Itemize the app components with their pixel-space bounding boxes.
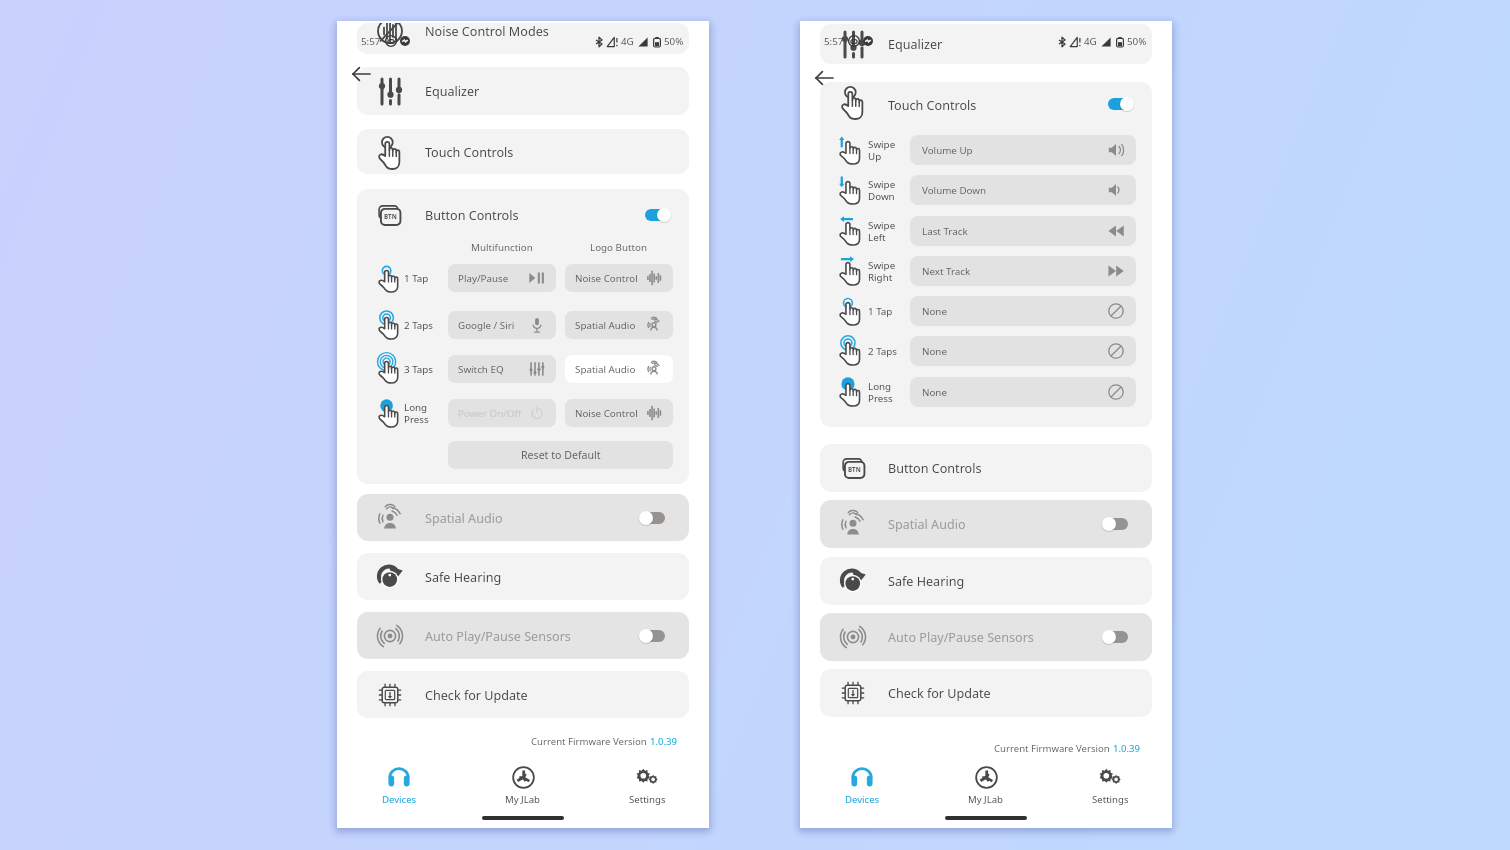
staticText: Noise Control Modes xyxy=(425,23,549,40)
staticText: Multifunction xyxy=(471,241,533,254)
staticText: 1.0.39 xyxy=(650,735,678,748)
staticText: None xyxy=(922,345,947,358)
staticText: 5:57 xyxy=(361,35,381,48)
staticText: 4G xyxy=(1084,35,1097,48)
button[interactable]: Volume Up xyxy=(910,135,1136,165)
button[interactable]: Back xyxy=(351,64,371,84)
staticText: Switch EQ xyxy=(458,363,504,376)
button[interactable]: Check for Update xyxy=(357,671,689,718)
staticText: Equalizer xyxy=(425,83,480,100)
button[interactable]: Play/Pause xyxy=(448,264,556,292)
staticText: Noise Control xyxy=(575,272,638,285)
button[interactable]: Toggle xyxy=(640,628,668,644)
staticText: Button Controls xyxy=(888,460,982,477)
button[interactable]: Power On/Off xyxy=(448,399,556,427)
button[interactable]: Spatial Audio xyxy=(820,500,1152,548)
button[interactable]: Toggle xyxy=(1108,96,1136,112)
button[interactable]: None xyxy=(910,336,1136,366)
button[interactable]: Button Controls xyxy=(357,189,689,237)
button[interactable]: Reset to Default xyxy=(448,441,673,469)
staticText: 5:57 xyxy=(824,35,844,48)
staticText: Swipe Left xyxy=(868,219,896,244)
button[interactable]: Settings xyxy=(1048,762,1172,808)
button[interactable]: Spatial Audio xyxy=(565,355,673,383)
staticText: Devices xyxy=(382,793,417,806)
button[interactable]: Volume Down xyxy=(910,175,1136,205)
staticText: 1 Tap xyxy=(868,305,893,318)
button[interactable]: Safe Hearing xyxy=(357,553,689,600)
button[interactable]: Switch EQ xyxy=(448,355,556,383)
button[interactable]: Back xyxy=(814,68,834,88)
button[interactable]: Devices xyxy=(337,762,461,808)
button[interactable]: Check for Update xyxy=(820,669,1152,717)
staticText: Spatial Audio xyxy=(888,516,966,533)
staticText: Touch Controls xyxy=(425,144,514,161)
button[interactable]: None xyxy=(910,377,1136,407)
button[interactable]: My JLab xyxy=(924,762,1048,808)
staticText: Current Firmware Version xyxy=(531,735,650,748)
staticText: 50% xyxy=(664,35,684,48)
staticText: None xyxy=(922,386,947,399)
button[interactable]: Next Track xyxy=(910,256,1136,286)
staticText: Volume Up xyxy=(922,144,973,157)
staticText: Safe Hearing xyxy=(888,573,965,590)
button[interactable]: Touch Controls xyxy=(357,129,689,174)
staticText: Long Press xyxy=(868,380,893,405)
staticText: Swipe Right xyxy=(868,259,896,284)
staticText: Swipe Down xyxy=(868,178,896,203)
button[interactable]: Google / Siri xyxy=(448,311,556,339)
button[interactable]: None xyxy=(910,296,1136,326)
button[interactable]: Touch Controls xyxy=(820,82,1152,124)
button[interactable]: Devices xyxy=(800,762,924,808)
button[interactable]: BTN xyxy=(820,444,1152,492)
button[interactable]: Noise Control xyxy=(565,399,673,427)
staticText: 2 Taps xyxy=(404,319,434,332)
staticText: Spatial Audio xyxy=(575,363,636,376)
staticText: Spatial Audio xyxy=(425,510,503,527)
staticText: Long Press xyxy=(404,401,429,426)
staticText: Google / Siri xyxy=(458,319,515,332)
button[interactable]: Settings xyxy=(585,762,709,808)
staticText: 3 Taps xyxy=(404,363,434,376)
staticText: Current Firmware Version xyxy=(994,742,1113,755)
staticText: Settings xyxy=(629,793,666,806)
button[interactable]: Equalizer xyxy=(357,67,689,115)
button[interactable]: Toggle xyxy=(1103,516,1131,532)
staticText: BTN xyxy=(384,212,397,220)
button[interactable]: Safe Hearing xyxy=(820,557,1152,605)
staticText: Reset to Default xyxy=(521,448,601,462)
button[interactable]: Auto Play/Pause Sensors xyxy=(357,612,689,659)
staticText: Power On/Off xyxy=(458,407,522,420)
button[interactable]: Spatial Audio xyxy=(565,311,673,339)
staticText: Swipe Up xyxy=(868,138,896,163)
button[interactable]: Noise Control xyxy=(565,264,673,292)
staticText: Auto Play/Pause Sensors xyxy=(425,628,571,645)
button[interactable]: Auto Play/Pause Sensors xyxy=(820,613,1152,661)
staticText: Equalizer xyxy=(888,36,943,53)
staticText: 1 Tap xyxy=(404,272,429,285)
staticText: Settings xyxy=(1092,793,1129,806)
staticText: 4G xyxy=(621,35,634,48)
button[interactable]: Equalizer xyxy=(820,24,1152,64)
staticText: Devices xyxy=(845,793,880,806)
staticText: 2 Taps xyxy=(868,345,898,358)
staticText: Check for Update xyxy=(888,685,991,702)
button[interactable]: Toggle xyxy=(1103,629,1131,645)
button[interactable]: Spatial Audio xyxy=(357,494,689,541)
staticText: Button Controls xyxy=(425,207,519,224)
button[interactable]: Last Track xyxy=(910,216,1136,246)
button[interactable]: Noise Control Modes xyxy=(357,23,689,54)
staticText: Play/Pause xyxy=(458,272,509,285)
staticText: BTN xyxy=(848,465,861,473)
staticText: Safe Hearing xyxy=(425,569,502,586)
staticText: Spatial Audio xyxy=(575,319,636,332)
staticText: Auto Play/Pause Sensors xyxy=(888,629,1034,646)
staticText: Next Track xyxy=(922,265,971,278)
staticText: My JLab xyxy=(505,793,541,806)
staticText: Check for Update xyxy=(425,687,528,704)
button[interactable]: Toggle xyxy=(645,207,673,223)
staticText: Touch Controls xyxy=(888,97,977,114)
button[interactable]: My JLab xyxy=(461,762,585,808)
button[interactable]: Toggle xyxy=(640,510,668,526)
staticText: Logo Button xyxy=(590,241,648,254)
